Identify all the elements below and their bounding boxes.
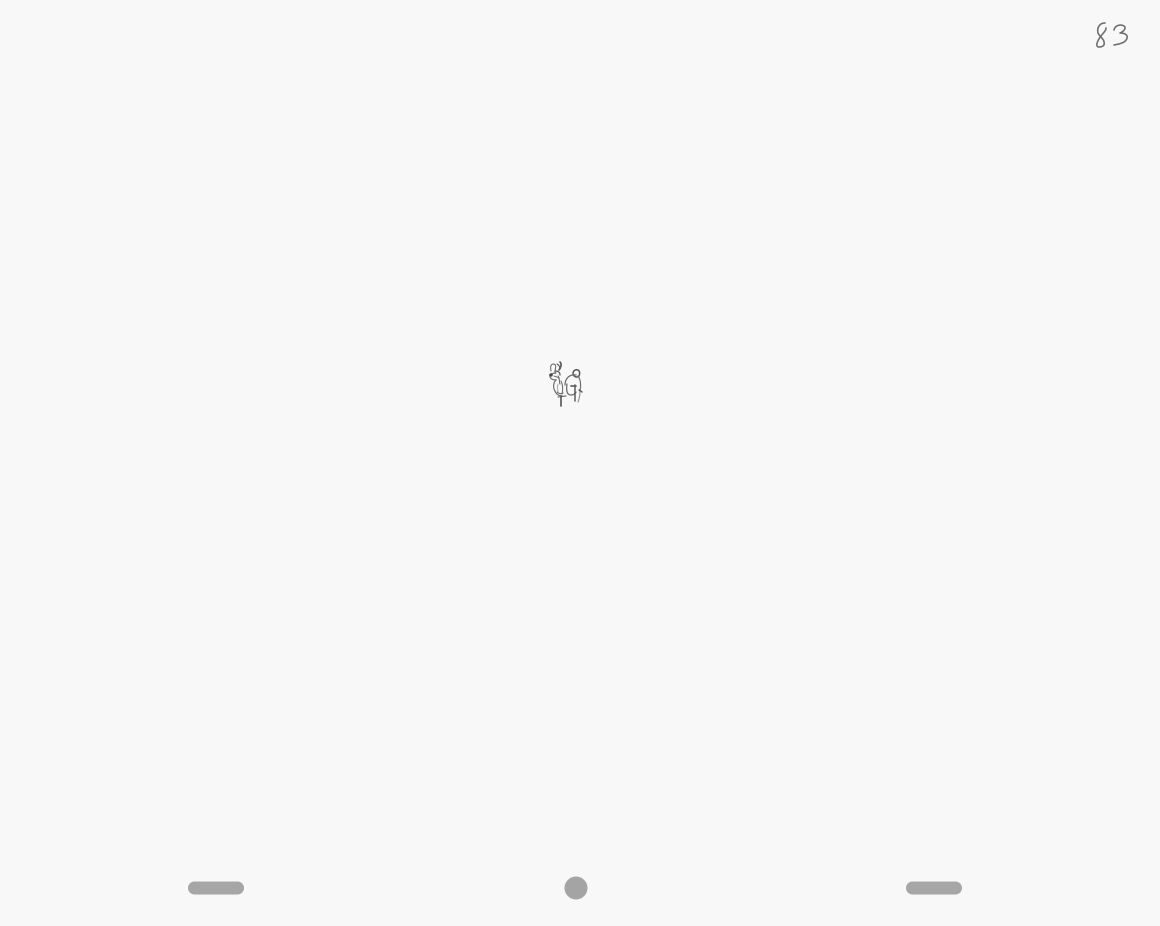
button[interactable]: Redo [890,866,978,910]
button[interactable]: Brush [554,866,598,910]
button[interactable]: Drawing canvas [0,0,1160,926]
button[interactable]: Undo [172,866,260,910]
